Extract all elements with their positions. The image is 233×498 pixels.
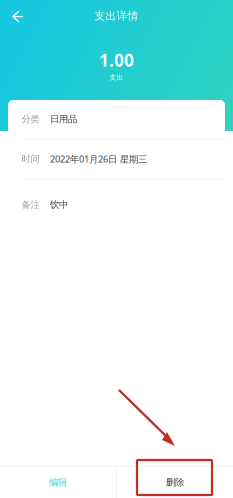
- staticText: 支出详情: [94, 9, 138, 22]
- staticText: 时间: [21, 153, 39, 165]
- staticText: 编辑: [49, 477, 67, 488]
- button[interactable]: 编辑: [0, 467, 116, 498]
- staticText: 分类: [21, 113, 39, 125]
- staticText: 1.00: [99, 48, 134, 71]
- staticText: 支出: [109, 73, 123, 82]
- staticText: 2022年01月26日 星期三: [50, 153, 147, 165]
- staticText: 日用品: [50, 113, 77, 125]
- staticText: 饮中: [50, 199, 68, 210]
- staticText: 备注: [21, 199, 39, 210]
- staticText: 删除: [166, 477, 184, 488]
- button[interactable]: Back: [0, 0, 32, 32]
- button[interactable]: 删除: [117, 467, 233, 498]
